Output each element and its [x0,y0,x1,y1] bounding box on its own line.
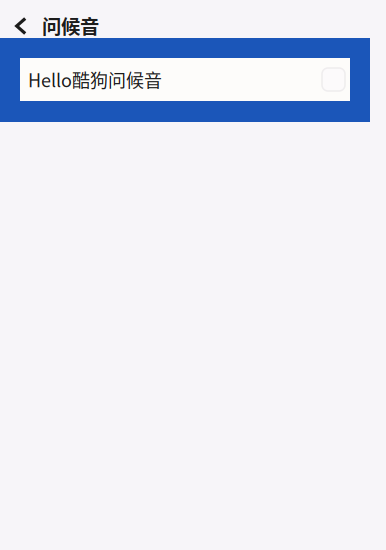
button[interactable]: Back [8,9,34,43]
button[interactable]: Hello酷狗问候音 [20,58,350,101]
button[interactable]: Hello酷狗问候音 switch [322,68,346,91]
staticText: Hello酷狗问候音 [28,66,162,93]
staticText: 问候音 [42,11,99,39]
